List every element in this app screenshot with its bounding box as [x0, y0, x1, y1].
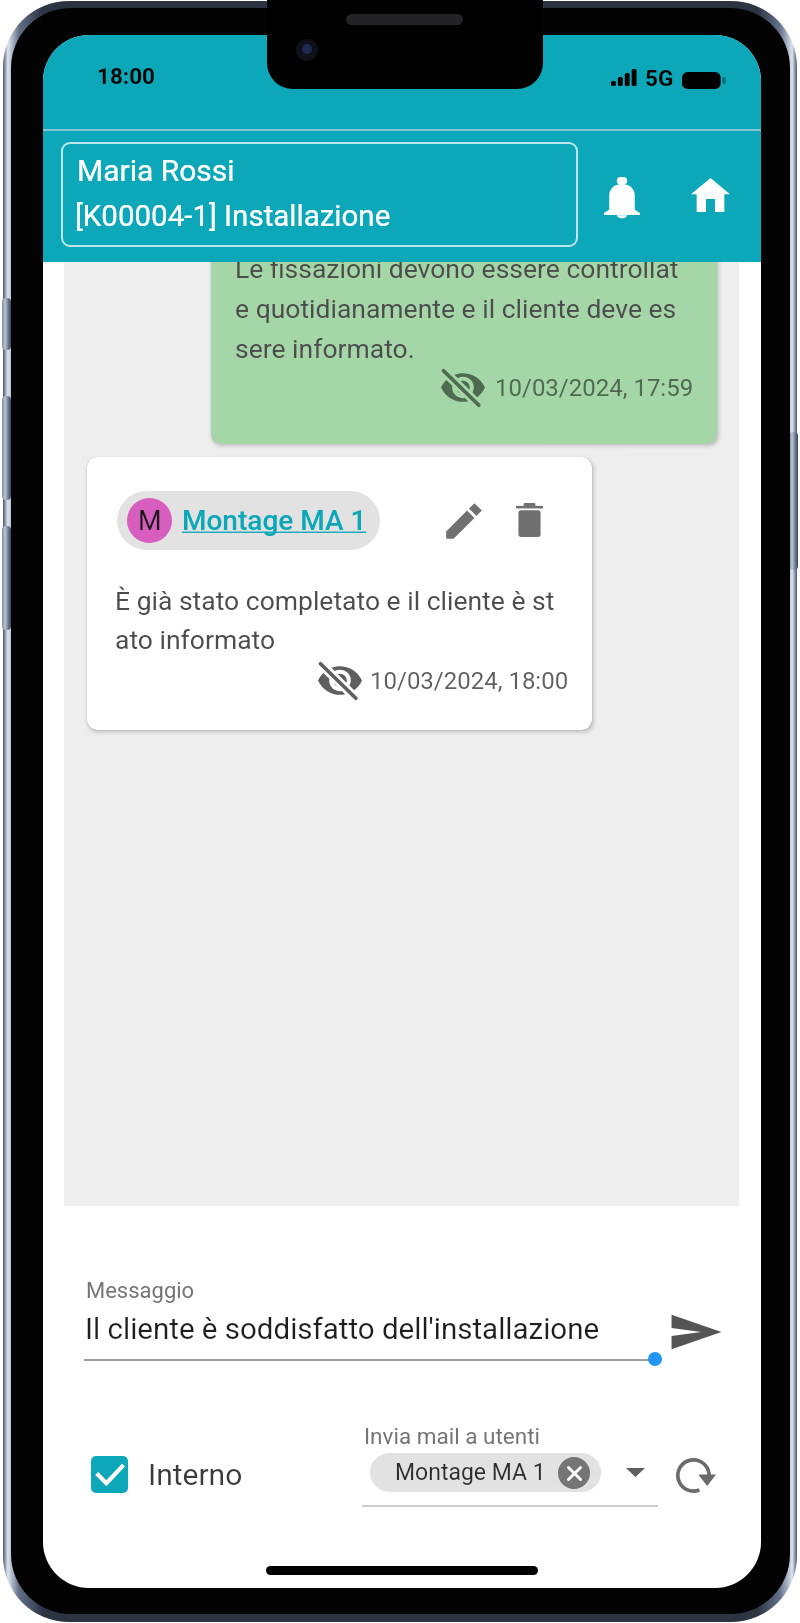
staticText: Montage MA 1	[182, 504, 367, 537]
button[interactable]: Home	[680, 165, 740, 225]
button[interactable]: Modifica	[437, 493, 491, 547]
button[interactable]: Montage MA 1	[370, 1453, 601, 1492]
staticText: Messaggio	[86, 1278, 195, 1304]
button[interactable]: Elimina	[502, 493, 556, 547]
button[interactable]: M	[117, 491, 380, 550]
button[interactable]: Aggiorna	[669, 1448, 723, 1502]
staticText: Montage MA 1	[395, 1459, 546, 1486]
staticText: [K00004-1] Installazione	[75, 199, 391, 234]
button[interactable]: Notifiche	[592, 167, 652, 227]
staticText: 5G	[645, 65, 674, 91]
staticText: 10/03/2024, 17:59	[495, 374, 694, 402]
staticText: Invia mail a utenti	[364, 1423, 541, 1449]
staticText: Maria Rossi	[77, 153, 235, 188]
staticText: È già stato completato e il cliente è st…	[115, 585, 555, 655]
button[interactable]: Invia	[663, 1299, 728, 1364]
staticText: 10/03/2024, 18:00	[370, 667, 569, 695]
staticText: Il cliente è soddisfatto dell'installazi…	[85, 1312, 600, 1347]
staticText: Interno	[148, 1457, 243, 1492]
button[interactable]: Maria Rossi	[61, 142, 578, 247]
button[interactable]: Interno	[91, 1456, 243, 1493]
button[interactable]: Espandi	[611, 1448, 659, 1496]
staticText: Le fissazioni devono essere controllat e…	[235, 262, 679, 364]
staticText: M	[138, 505, 162, 537]
staticText: 18:00	[97, 63, 155, 89]
